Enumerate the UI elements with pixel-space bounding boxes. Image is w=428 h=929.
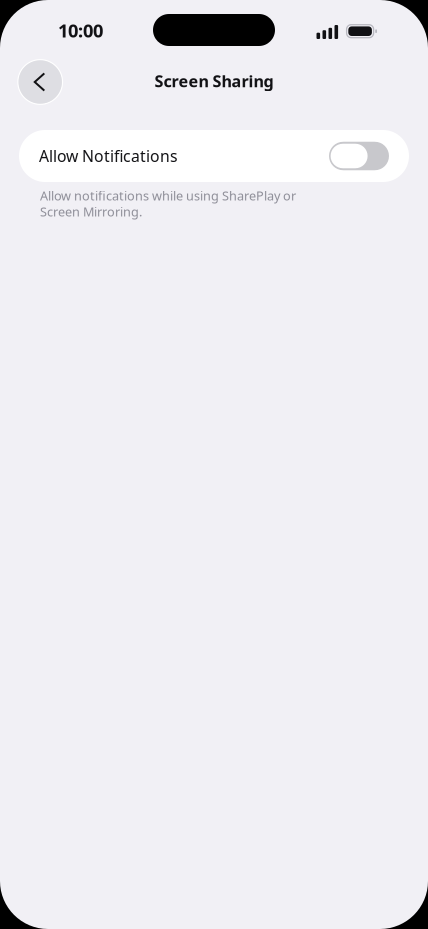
staticText: 10:00 (58, 18, 103, 43)
button[interactable]: Allow Notifications (19, 130, 409, 182)
staticText: Allow notifications while using SharePla… (40, 187, 296, 204)
staticText: Screen Mirroring. (40, 203, 142, 220)
button[interactable]: Back (18, 60, 62, 104)
staticText: Allow Notifications (39, 145, 178, 167)
staticText: Screen Sharing (154, 70, 273, 92)
